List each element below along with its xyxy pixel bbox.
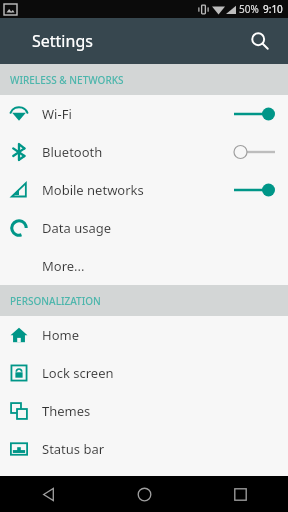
staticText: Bluetooth (42, 143, 230, 161)
staticText: Wi-Fi (42, 105, 230, 123)
button[interactable]: Toggle on (230, 178, 276, 202)
button[interactable]: Status bar (0, 430, 288, 468)
button[interactable]: Mobile networks (0, 171, 288, 209)
staticText: Status bar (42, 440, 276, 458)
button[interactable]: Recents (192, 476, 288, 512)
staticText: More... (42, 257, 276, 275)
button[interactable]: Lock screen (0, 354, 288, 392)
staticText: Data usage (42, 219, 276, 237)
button[interactable]: Home (96, 476, 192, 512)
staticText: Home (42, 326, 276, 344)
button[interactable]: Data usage (0, 209, 288, 247)
staticText: Mobile networks (42, 181, 230, 199)
staticText: Lock screen (42, 364, 276, 382)
button[interactable]: Back (0, 476, 96, 512)
button[interactable]: Bluetooth (0, 133, 288, 171)
staticText: WIRELESS & NETWORKS (10, 73, 124, 87)
button[interactable]: Search (242, 23, 278, 59)
button[interactable]: Toggle on (230, 102, 276, 126)
button[interactable]: More... (0, 247, 288, 285)
button[interactable]: Themes (0, 392, 288, 430)
staticText: 9:10 (263, 2, 283, 16)
staticText: PERSONALIZATION (10, 294, 101, 308)
button[interactable]: Wi-Fi (0, 95, 288, 133)
staticText: Settings (32, 30, 93, 52)
staticText: Themes (42, 402, 276, 420)
staticText: 50% (239, 2, 259, 16)
button[interactable]: Toggle off (230, 140, 276, 164)
button[interactable]: Home (0, 316, 288, 354)
